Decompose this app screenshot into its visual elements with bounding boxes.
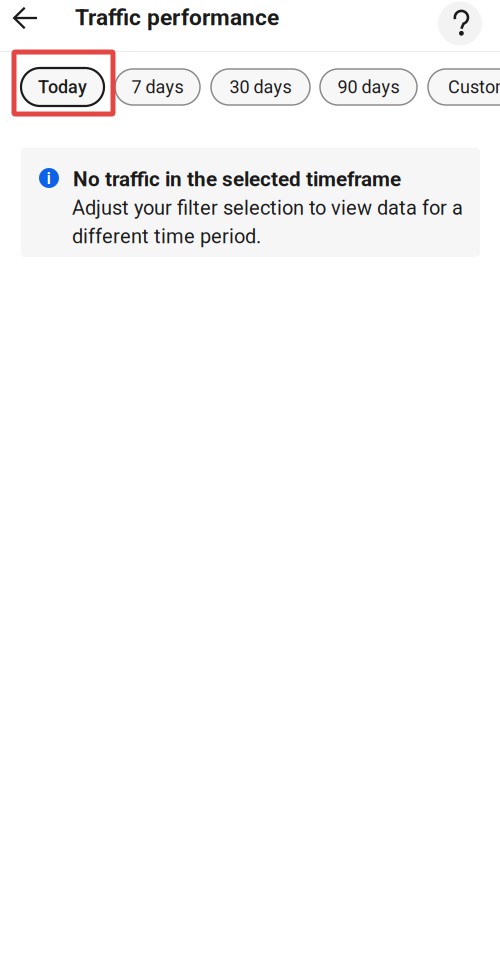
staticText: i [46, 168, 51, 188]
button[interactable]: Help [438, 1, 482, 45]
staticText: Today [38, 76, 87, 98]
staticText: Traffic performance [75, 4, 279, 31]
staticText: different time period. [72, 225, 261, 248]
staticText: Adjust your filter selection to view dat… [72, 196, 463, 220]
button[interactable]: Custom [428, 69, 500, 105]
button[interactable]: 30 days [211, 69, 310, 105]
staticText: No traffic in the selected timeframe [73, 167, 401, 191]
staticText: 7 days [131, 76, 183, 98]
button[interactable]: Back [0, 0, 50, 51]
button[interactable]: 90 days [320, 69, 417, 105]
staticText: Custom [448, 76, 500, 98]
button[interactable]: 7 days [115, 69, 200, 105]
staticText: 30 days [229, 76, 291, 98]
staticText: 90 days [337, 76, 399, 98]
button[interactable]: Today [21, 68, 104, 106]
